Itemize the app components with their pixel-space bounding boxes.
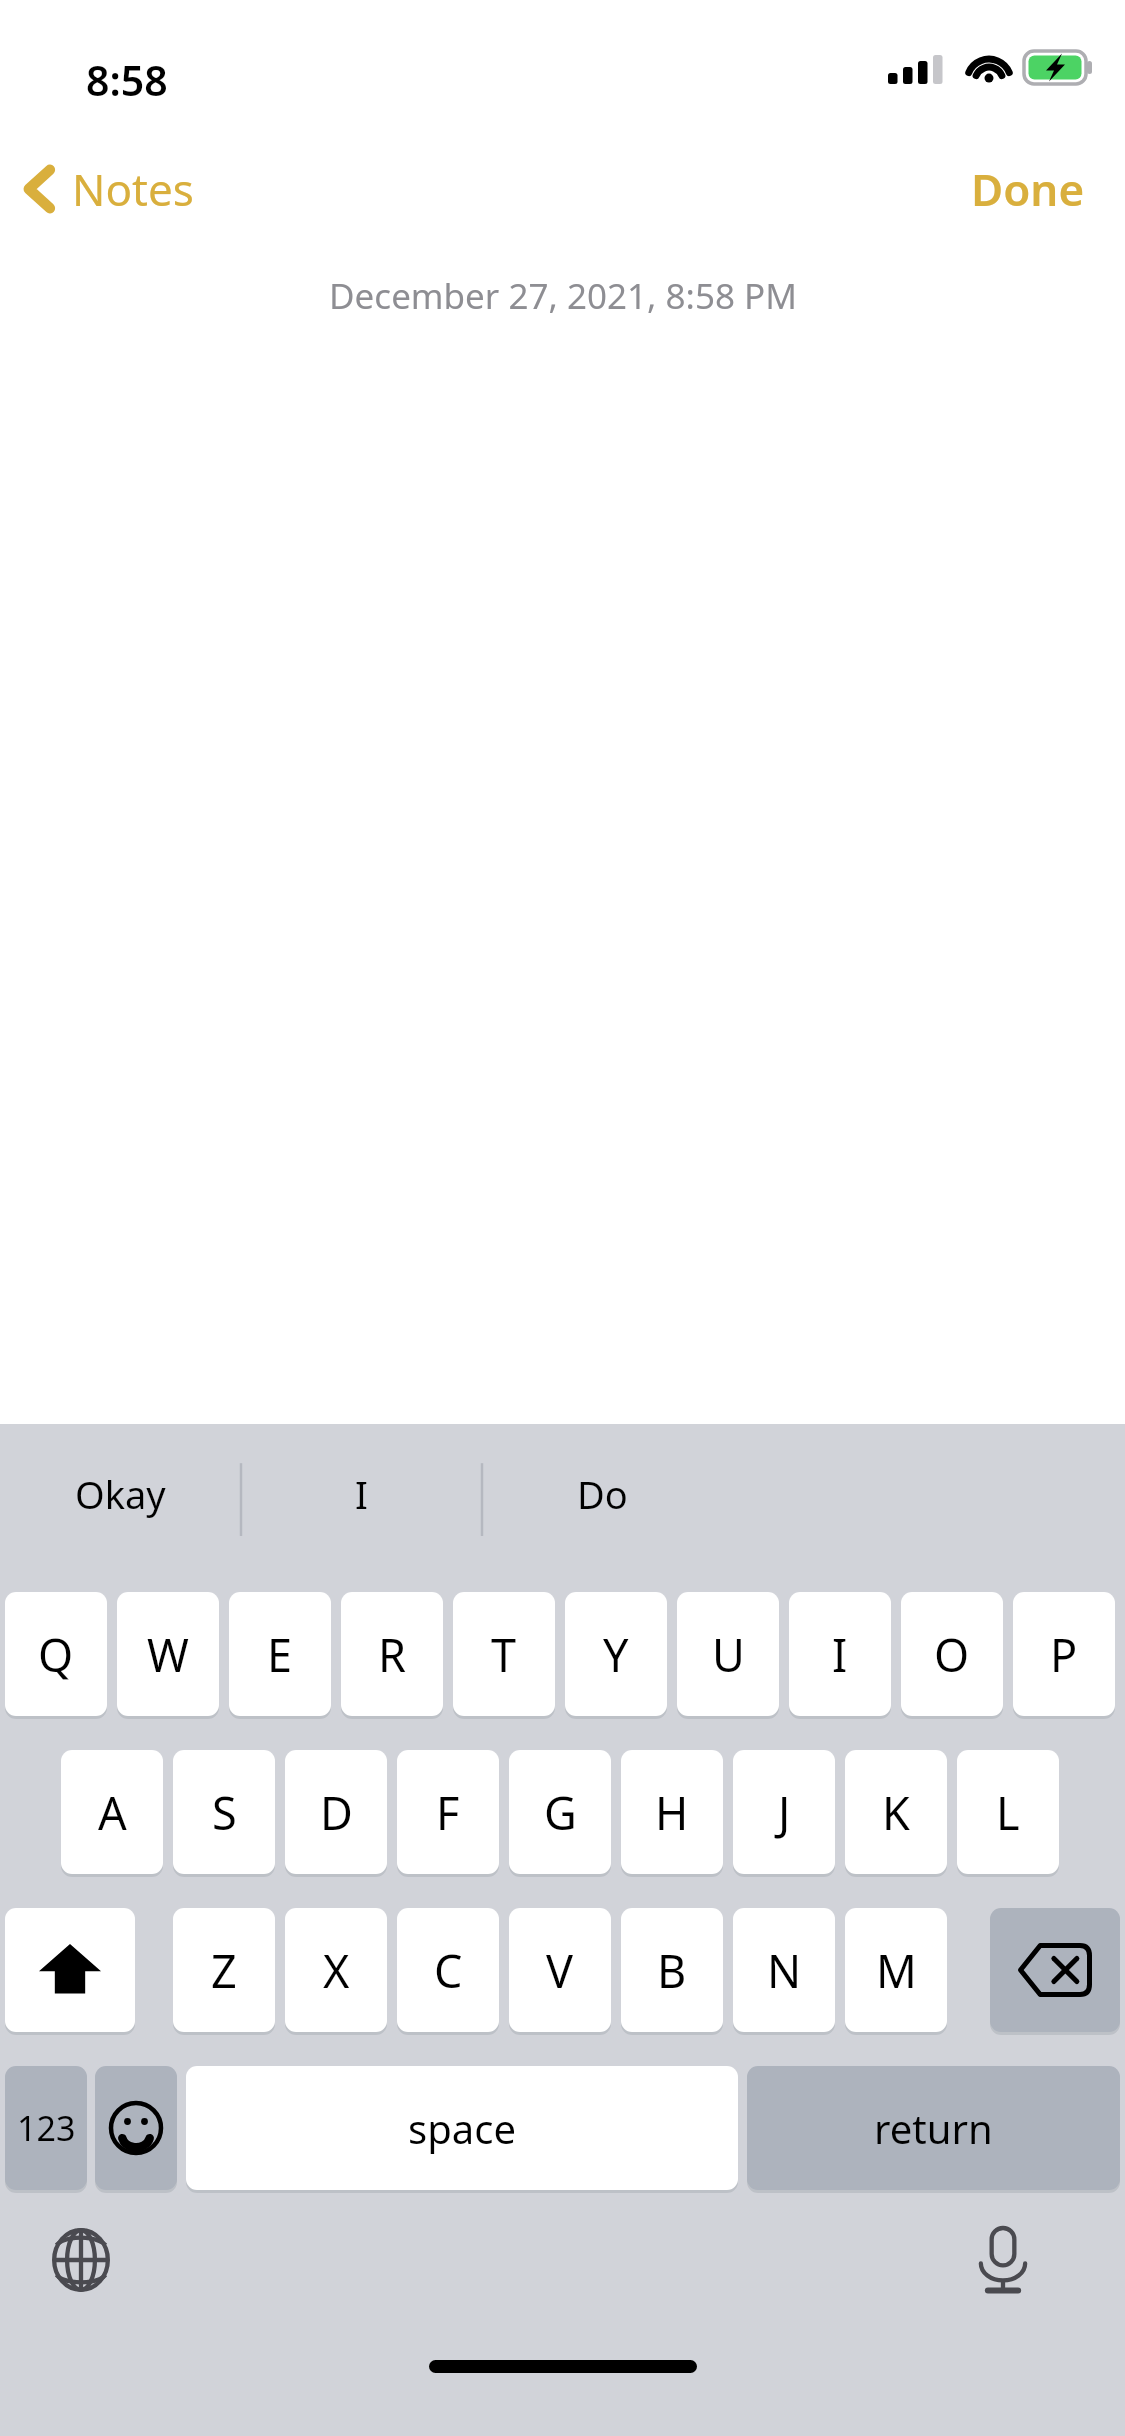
button[interactable]: K xyxy=(845,1750,947,1874)
staticText: Done xyxy=(971,159,1085,219)
staticText: D xyxy=(320,1782,353,1843)
button[interactable]: F xyxy=(397,1750,499,1874)
button[interactable]: L xyxy=(957,1750,1059,1874)
staticText: R xyxy=(378,1624,406,1685)
button[interactable]: S xyxy=(173,1750,275,1874)
button[interactable]: Notes xyxy=(10,152,206,226)
staticText: T xyxy=(491,1624,517,1685)
button[interactable]: Next keyboard xyxy=(38,2212,124,2308)
button[interactable]: I xyxy=(789,1592,891,1716)
staticText: Notes xyxy=(72,159,194,219)
button[interactable]: R xyxy=(341,1592,443,1716)
staticText: C xyxy=(434,1940,463,2001)
staticText: 123 xyxy=(17,2105,76,2151)
button[interactable]: C xyxy=(397,1908,499,2032)
staticText: Y xyxy=(603,1624,629,1685)
staticText: K xyxy=(882,1782,910,1843)
button[interactable]: 123 xyxy=(5,2066,87,2190)
staticText: I xyxy=(355,1468,368,1520)
button[interactable]: T xyxy=(453,1592,555,1716)
staticText: space xyxy=(408,2101,516,2155)
staticText: X xyxy=(323,1940,350,2001)
button[interactable]: Done xyxy=(931,152,1125,226)
staticText: S xyxy=(212,1782,237,1843)
button[interactable]: H xyxy=(621,1750,723,1874)
staticText: G xyxy=(544,1782,577,1843)
staticText: U xyxy=(712,1624,745,1685)
staticText: W xyxy=(147,1624,189,1685)
button[interactable]: Shift xyxy=(5,1908,135,2032)
button[interactable]: U xyxy=(677,1592,779,1716)
staticText: J xyxy=(778,1782,791,1843)
button[interactable]: Emoji xyxy=(95,2066,177,2190)
staticText: Okay xyxy=(75,1468,166,1520)
button[interactable]: Dictate xyxy=(960,2212,1046,2308)
button[interactable]: D xyxy=(285,1750,387,1874)
staticText: Do xyxy=(577,1468,628,1520)
button[interactable]: space xyxy=(186,2066,738,2190)
staticText: Z xyxy=(211,1940,237,2001)
button[interactable]: Q xyxy=(5,1592,107,1716)
button[interactable]: W xyxy=(117,1592,219,1716)
button[interactable]: Backspace xyxy=(990,1908,1120,2032)
staticText: December 27, 2021, 8:58 PM xyxy=(329,272,797,320)
button[interactable]: return xyxy=(747,2066,1120,2190)
button[interactable]: Okay xyxy=(0,1424,241,1564)
staticText: N xyxy=(767,1940,802,2001)
button[interactable]: Do xyxy=(482,1424,723,1564)
staticText: A xyxy=(98,1782,127,1843)
button[interactable]: Y xyxy=(565,1592,667,1716)
staticText: M xyxy=(876,1940,917,2001)
button[interactable]: M xyxy=(845,1908,947,2032)
staticText: I xyxy=(832,1624,848,1685)
staticText: E xyxy=(267,1624,293,1685)
button[interactable]: E xyxy=(229,1592,331,1716)
staticText: V xyxy=(546,1940,574,2001)
button[interactable]: V xyxy=(509,1908,611,2032)
button[interactable]: A xyxy=(61,1750,163,1874)
button[interactable]: J xyxy=(733,1750,835,1874)
staticText: O xyxy=(934,1624,970,1685)
button[interactable]: X xyxy=(285,1908,387,2032)
staticText: Q xyxy=(38,1624,74,1685)
button[interactable]: N xyxy=(733,1908,835,2032)
staticText: return xyxy=(874,2101,993,2155)
button[interactable]: O xyxy=(901,1592,1003,1716)
button[interactable]: I xyxy=(241,1424,482,1564)
staticText: 8:58 xyxy=(86,52,168,108)
button[interactable]: P xyxy=(1013,1592,1115,1716)
staticText: F xyxy=(436,1782,460,1843)
staticText: H xyxy=(655,1782,689,1843)
staticText: P xyxy=(1050,1624,1078,1685)
button[interactable]: Z xyxy=(173,1908,275,2032)
button[interactable]: B xyxy=(621,1908,723,2032)
staticText: B xyxy=(657,1940,687,2001)
button[interactable]: G xyxy=(509,1750,611,1874)
staticText: L xyxy=(996,1782,1020,1843)
